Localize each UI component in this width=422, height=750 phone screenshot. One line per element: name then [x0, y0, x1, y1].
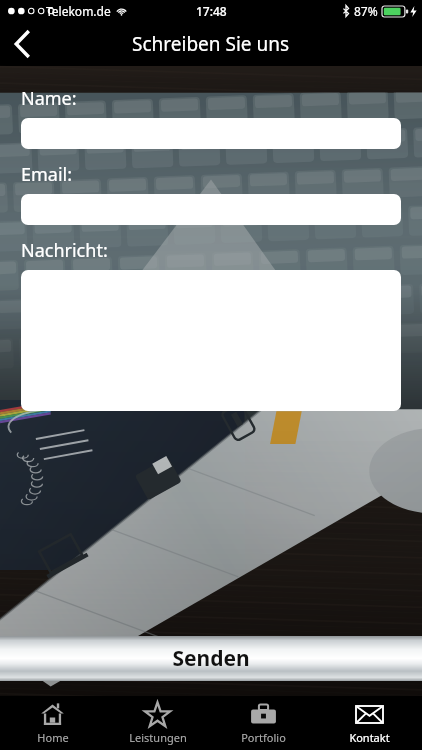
- staticText: Portfolio: [241, 730, 286, 745]
- staticText: 87%: [354, 3, 378, 19]
- staticText: Telekom.de: [46, 3, 111, 19]
- button[interactable]: Home: [0, 696, 105, 750]
- staticText: Home: [37, 730, 69, 745]
- staticText: Name:: [21, 86, 77, 111]
- button[interactable]: Senden: [0, 636, 422, 681]
- staticText: Schreiben Sie uns: [132, 31, 290, 57]
- staticText: Senden: [172, 644, 250, 673]
- button[interactable]: Name input field: [21, 118, 401, 149]
- button[interactable]: Portfolio: [210, 696, 316, 750]
- button[interactable]: Message input field: [21, 270, 401, 411]
- staticText: Nachricht:: [21, 238, 108, 263]
- staticText: Kontakt: [349, 730, 390, 745]
- button[interactable]: Leistungen: [105, 696, 210, 750]
- button[interactable]: Back: [0, 22, 44, 66]
- button[interactable]: Email input field: [21, 194, 401, 225]
- staticText: 17:48: [196, 3, 227, 19]
- staticText: Email:: [21, 162, 73, 187]
- button[interactable]: Kontakt: [316, 696, 422, 750]
- staticText: Leistungen: [129, 730, 187, 745]
